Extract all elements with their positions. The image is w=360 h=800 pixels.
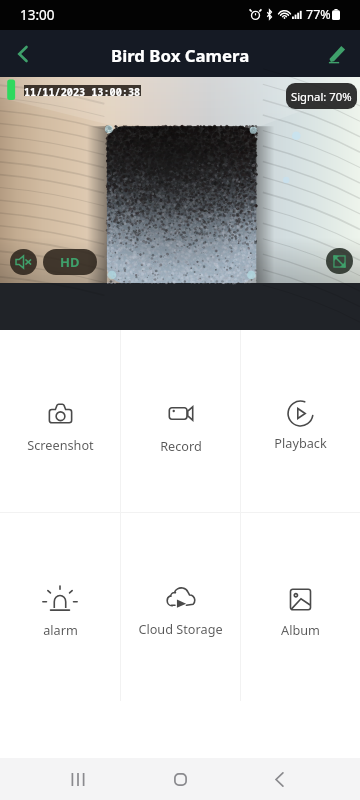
- button[interactable]: Screenshot: [0, 330, 120, 512]
- button[interactable]: Playback: [241, 330, 360, 512]
- button[interactable]: Back: [255, 767, 303, 791]
- staticText: HD: [60, 253, 80, 271]
- staticText: Cloud Storage: [138, 620, 223, 637]
- button[interactable]: alarm: [0, 513, 120, 701]
- staticText: alarm: [43, 621, 78, 638]
- button[interactable]: Signal: 70%: [286, 83, 357, 109]
- button[interactable]: Mute: [10, 249, 37, 275]
- button[interactable]: Fullscreen: [326, 248, 353, 274]
- staticText: Bird Box Camera: [111, 44, 250, 67]
- button[interactable]: Recent apps: [54, 767, 102, 791]
- button[interactable]: Edit: [314, 31, 360, 77]
- staticText: 13:00: [20, 6, 55, 24]
- staticText: 11/11/2023 13:00:38: [24, 85, 141, 96]
- staticText: Record: [160, 437, 202, 454]
- staticText: Playback: [274, 434, 327, 451]
- staticText: Screenshot: [27, 436, 94, 453]
- button[interactable]: Record: [121, 330, 240, 512]
- button[interactable]: Home: [156, 767, 204, 791]
- button[interactable]: Cloud Storage: [121, 513, 240, 701]
- staticText: Album: [281, 621, 320, 638]
- staticText: 77%: [306, 6, 331, 23]
- button[interactable]: Back: [0, 31, 46, 77]
- button[interactable]: HD: [43, 249, 97, 275]
- staticText: Signal: 70%: [291, 89, 352, 104]
- button[interactable]: Album: [241, 513, 360, 701]
